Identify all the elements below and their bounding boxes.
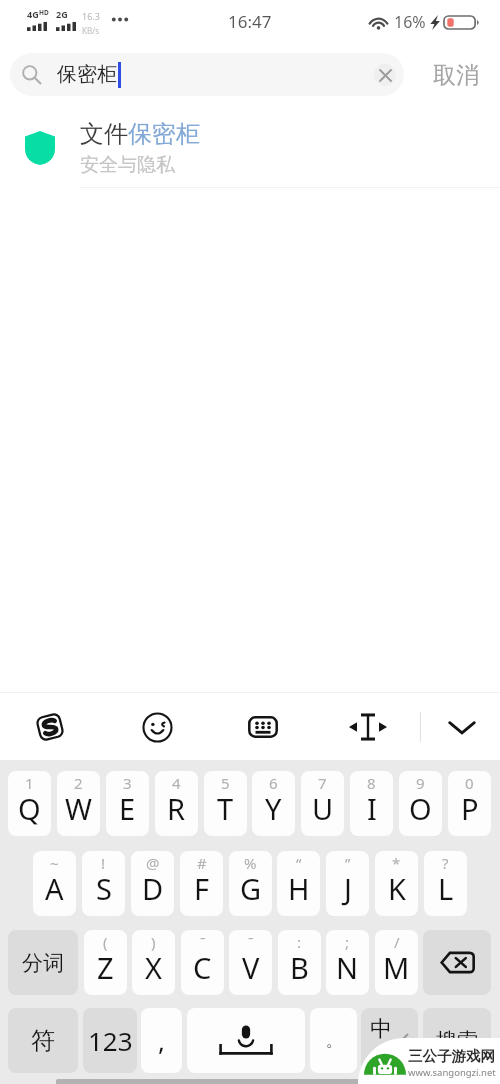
staticText: www.sangongzi.net [408,1066,496,1079]
button[interactable]: ” [326,851,369,916]
button[interactable]: 3 [106,771,149,836]
staticText: 4 [172,773,181,793]
staticText: P [461,789,479,828]
staticText: 16% [394,11,426,33]
staticText: Q [18,789,41,828]
button[interactable]: 1 [8,771,51,836]
staticText: X [145,948,162,987]
button[interactable]: # [180,851,223,916]
button[interactable]: 4 [155,771,198,836]
staticText: 2G [56,8,68,20]
staticText: 3 [123,773,132,793]
staticText: 保密柜 [57,62,117,87]
staticText: * [392,853,401,873]
staticText: ) [151,932,156,952]
staticText: Y [265,789,282,828]
button[interactable]: 123 [83,1008,137,1073]
staticText: 取消 [433,61,479,90]
button[interactable]: 搜索 [423,1008,491,1073]
staticText: E [119,789,136,828]
staticText: N [336,948,359,987]
staticText: 16.3 [82,10,100,22]
button[interactable]: / [375,930,418,995]
staticText: ˉ [200,932,206,952]
button[interactable]: 。 [310,1008,357,1073]
button[interactable]: Keyboard layout [239,703,287,751]
staticText: R [167,789,186,828]
staticText: 123 [88,1023,133,1058]
staticText: U [312,789,334,828]
staticText: HD [39,8,49,17]
staticText: 4G [27,8,39,20]
button[interactable]: Move cursor [344,703,392,751]
button[interactable] [187,1008,305,1073]
staticText: 1 [25,773,34,793]
staticText: ! [101,853,106,873]
button[interactable]: 0 [448,771,491,836]
button[interactable]: 9 [399,771,442,836]
button[interactable]: ~ [33,851,76,916]
staticText: , [158,1023,165,1058]
staticText: T [217,789,234,828]
button[interactable]: 符 [8,1008,78,1073]
button[interactable]: ; [326,930,369,995]
button[interactable]: 5 [204,771,247,836]
staticText: 三公子游戏网 [408,1047,495,1065]
staticText: “ [296,853,302,873]
button[interactable]: Hide keyboard [438,703,486,751]
button[interactable]: ! [82,851,125,916]
staticText: V [242,948,260,987]
staticText: 文件 [80,119,128,149]
staticText: A [45,869,64,908]
button[interactable]: Emoji [133,703,181,751]
staticText: B [290,948,309,987]
staticText: Z [97,948,114,987]
staticText: % [244,853,257,873]
button[interactable]: 2 [57,771,100,836]
button[interactable]: 8 [350,771,393,836]
staticText: M [383,948,410,987]
button[interactable]: 保密柜 [10,53,404,96]
button[interactable]: % [229,851,272,916]
button[interactable]: ? [424,851,467,916]
button[interactable]: Sogou input settings [26,703,74,751]
button[interactable]: “ [277,851,320,916]
staticText: @ [146,853,160,873]
button[interactable]: , [141,1008,182,1073]
button[interactable]: 分词 [8,930,78,995]
button[interactable]: * [375,851,418,916]
staticText: W [65,789,92,828]
staticText: 5 [221,773,230,793]
staticText: 搜索 [436,1028,478,1054]
button[interactable]: 文件 [0,100,500,187]
staticText: ; [345,932,350,952]
staticText: H [288,869,310,908]
staticText: ( [103,932,108,952]
staticText: 7 [318,773,327,793]
button[interactable]: Clear text [374,64,396,86]
button[interactable]: 取消 [412,53,500,97]
staticText: O [409,789,432,828]
button[interactable]: 中 [361,1008,418,1073]
staticText: F [194,869,210,908]
staticText: K [388,869,406,908]
staticText: L [438,869,454,908]
staticText: I [367,789,377,828]
button[interactable]: 7 [301,771,344,836]
staticText: : [297,932,302,952]
button[interactable]: : [278,930,321,995]
staticText: 保密柜 [128,119,200,149]
staticText: 9 [416,773,425,793]
staticText: C [193,948,212,987]
button[interactable]: @ [131,851,174,916]
button[interactable]: ) [132,930,175,995]
button[interactable]: ˉ [181,930,224,995]
button[interactable] [423,930,491,995]
staticText: 英 [398,1047,414,1067]
staticText: 0 [465,773,474,793]
button[interactable]: ( [84,930,127,995]
button[interactable]: ˉ [229,930,272,995]
staticText: 16:47 [228,10,272,33]
button[interactable]: 6 [252,771,295,836]
staticText: 中 [370,1015,392,1043]
